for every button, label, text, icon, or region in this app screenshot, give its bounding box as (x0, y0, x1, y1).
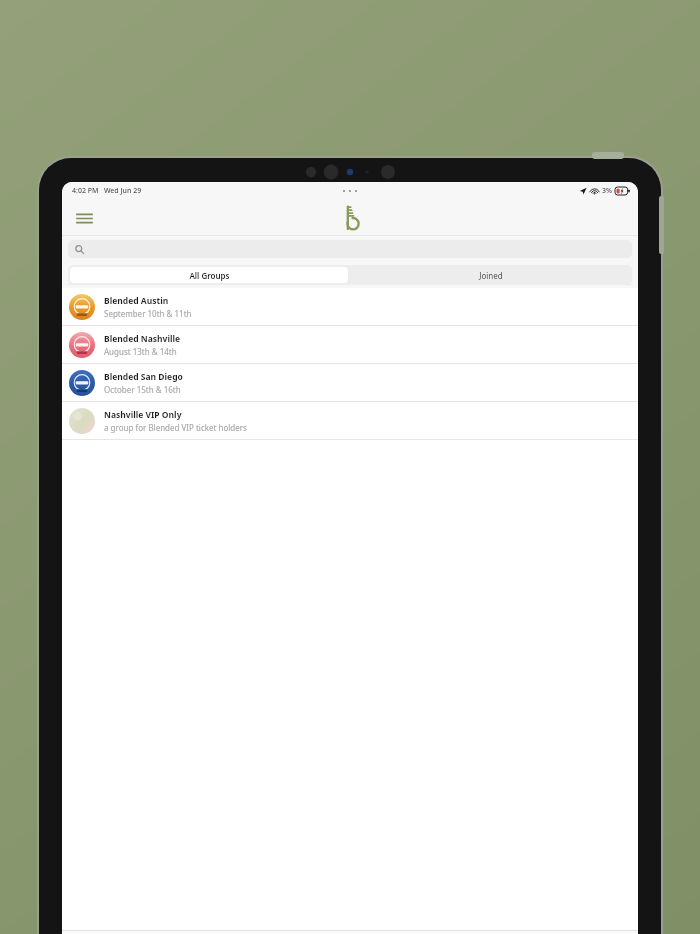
staticText: Nashville VIP Only (104, 409, 182, 421)
button[interactable]: Blended Austin (62, 288, 638, 325)
staticText: All Groups (189, 270, 230, 281)
button[interactable]: Search (68, 240, 632, 258)
staticText: 4:02 PM Wed Jun 29 (72, 186, 142, 196)
staticText: Blended Nashville (104, 333, 181, 345)
staticText: September 10th & 11th (104, 308, 192, 319)
button[interactable]: Blended San Diego (62, 364, 638, 401)
staticText: Joined (479, 270, 503, 281)
staticText: Blended San Diego (104, 371, 183, 383)
button[interactable]: Joined (350, 265, 632, 285)
staticText: Blended Austin (104, 295, 169, 307)
staticText: a group for Blended VIP ticket holders (104, 422, 247, 433)
button[interactable]: Menu (70, 204, 98, 232)
button[interactable]: Blended Nashville (62, 326, 638, 363)
button[interactable]: All Groups (70, 267, 348, 283)
button[interactable]: Nashville VIP Only (62, 402, 638, 439)
staticText: 3% (602, 186, 612, 196)
staticText: August 13th & 14th (104, 346, 177, 357)
staticText: October 15th & 16th (104, 384, 181, 395)
